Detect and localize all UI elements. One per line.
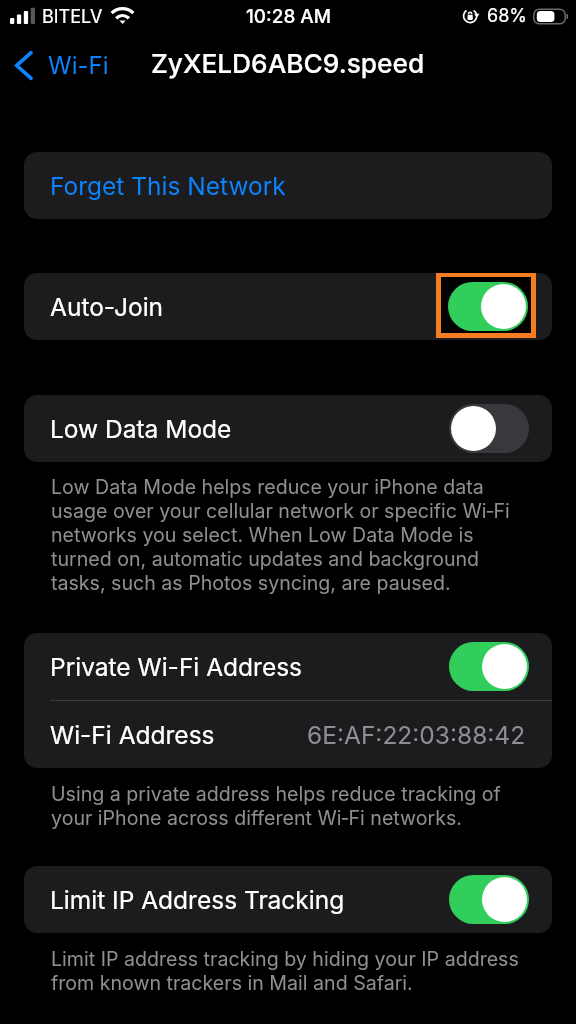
staticText: Low Data Mode helps reduce your iPhone d… bbox=[51, 475, 531, 595]
staticText: Auto-Join bbox=[50, 292, 164, 322]
button[interactable]: Forget This Network bbox=[24, 152, 552, 219]
button[interactable]: Private Wi-Fi Address toggle, on bbox=[449, 642, 529, 691]
staticText: 68% bbox=[487, 5, 527, 27]
button[interactable]: Low Data Mode toggle, off bbox=[449, 404, 529, 453]
staticText: 10:28 AM bbox=[246, 5, 331, 28]
staticText: Limit IP Address Tracking bbox=[50, 885, 345, 915]
button[interactable]: Limit IP Address Tracking toggle, on bbox=[449, 875, 529, 924]
staticText: Wi-Fi bbox=[48, 51, 109, 80]
staticText: Low Data Mode bbox=[50, 414, 232, 444]
button[interactable]: Private Wi-Fi Address bbox=[24, 633, 552, 700]
staticText: 6E:AF:22:03:88:42 bbox=[307, 720, 526, 750]
staticText: Forget This Network bbox=[50, 171, 286, 201]
staticText: Limit IP address tracking by hiding your… bbox=[51, 947, 531, 995]
button[interactable]: Wi-Fi Address bbox=[24, 701, 552, 768]
staticText: Private Wi-Fi Address bbox=[50, 652, 303, 682]
staticText: Wi-Fi Address bbox=[50, 720, 215, 750]
staticText: ZyXELD6ABC9.speed bbox=[151, 48, 425, 80]
staticText: BITELV bbox=[42, 6, 103, 28]
staticText: Using a private address helps reduce tra… bbox=[51, 782, 531, 830]
button[interactable]: Auto-Join toggle, on bbox=[448, 282, 528, 331]
button[interactable]: Wi-Fi bbox=[7, 43, 117, 88]
